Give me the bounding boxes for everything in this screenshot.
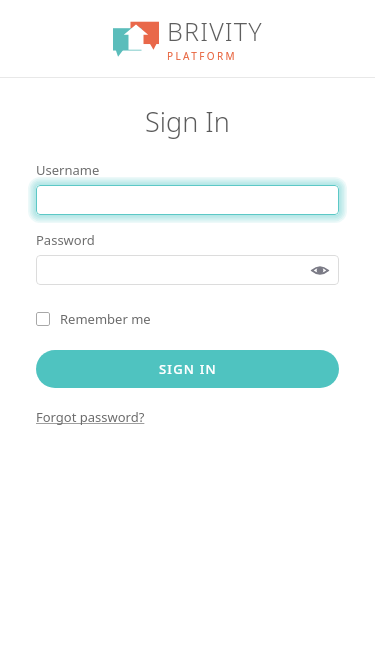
button[interactable]: SIGN IN (36, 350, 339, 388)
staticText: PLATFORM (167, 49, 238, 63)
button[interactable]: Forgot password? (36, 408, 145, 426)
staticText: BRIVITY (167, 14, 263, 48)
button[interactable] (36, 185, 339, 215)
staticText: Password (36, 231, 95, 249)
button[interactable]: Show password (310, 260, 330, 280)
button[interactable]: Remember me (36, 310, 151, 328)
staticText: SIGN IN (159, 360, 217, 378)
staticText: Forgot password? (36, 408, 145, 426)
button[interactable]: Show password (36, 255, 339, 285)
staticText: Remember me (60, 310, 151, 328)
staticText: Sign In (145, 103, 230, 140)
staticText: Username (36, 161, 100, 179)
